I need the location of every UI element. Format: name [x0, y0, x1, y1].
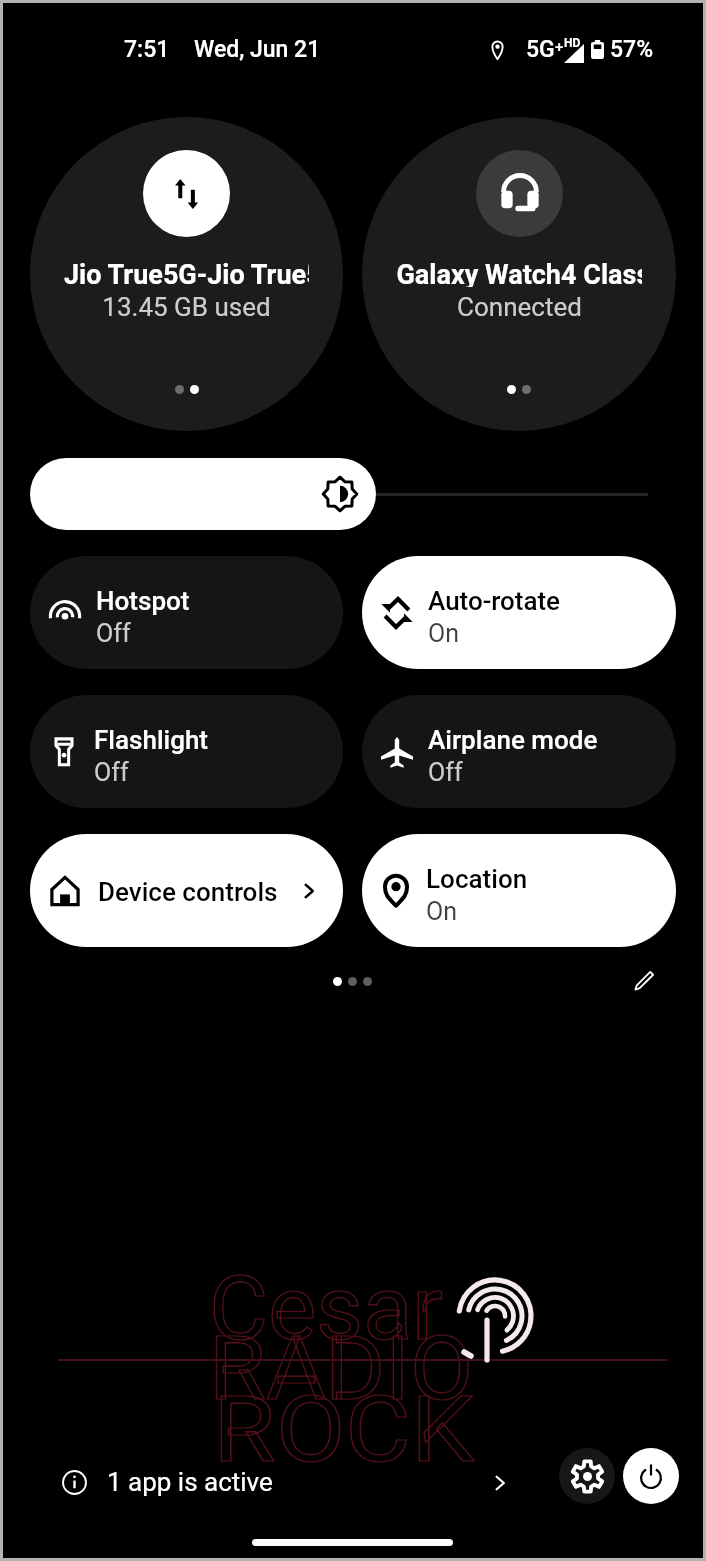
button[interactable]: Galaxy Watch4 Classic [362, 117, 676, 431]
staticText: Flashlight [94, 725, 209, 755]
staticText: 1 app is active [107, 1467, 273, 1497]
staticText: 13.45 GB used [102, 292, 271, 322]
button[interactable]: Hotspot [30, 556, 343, 669]
staticText: HD [564, 36, 581, 50]
staticText: On [426, 897, 458, 926]
staticText: Hotspot [96, 586, 190, 616]
staticText: Auto-rotate [428, 586, 561, 616]
staticText: 5G [526, 36, 555, 63]
other: Edit tiles [632, 969, 656, 993]
staticText: Off [96, 619, 131, 648]
staticText: Airplane mode [428, 725, 598, 755]
button[interactable]: Jio True5G-Jio True5G [30, 117, 343, 431]
button[interactable]: Device controls [30, 834, 343, 947]
staticText: + [555, 38, 562, 56]
staticText: Wed, Jun 21 [194, 36, 321, 63]
staticText: Connected [457, 292, 582, 322]
button[interactable]: Flashlight [30, 695, 343, 808]
staticText: Device controls [98, 877, 278, 907]
button[interactable]: Brightness [30, 458, 376, 530]
staticText: Jio True5G-Jio True5G [64, 259, 309, 287]
staticText: Off [94, 758, 129, 787]
staticText: Galaxy Watch4 Classic [396, 259, 642, 287]
button[interactable]: Location [362, 834, 676, 947]
staticText: Location [426, 864, 528, 894]
button[interactable]: Airplane mode [362, 695, 676, 808]
button[interactable]: Power [623, 1448, 679, 1504]
button[interactable]: Settings [559, 1448, 615, 1504]
staticText: 57% [610, 36, 654, 63]
staticText: On [428, 619, 460, 648]
button[interactable]: Auto-rotate [362, 556, 676, 669]
staticText: 7:51 [124, 36, 170, 63]
staticText: Off [428, 758, 463, 787]
other: Expand [488, 1471, 512, 1495]
